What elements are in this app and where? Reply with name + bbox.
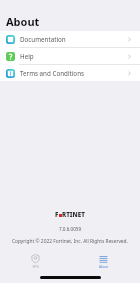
staticText: RTINET: [62, 210, 85, 218]
button[interactable]: VPN: [1, 254, 69, 270]
button[interactable]: Terms and Conditions: [0, 65, 140, 81]
staticText: F: [55, 210, 59, 218]
other: About: [99, 254, 108, 263]
staticText: About: [6, 14, 40, 29]
button[interactable]: Help: [0, 48, 140, 64]
button[interactable]: About: [69, 254, 138, 270]
button[interactable]: Documentation: [0, 31, 140, 47]
staticText: About: [99, 265, 108, 269]
staticText: VPN: [32, 265, 39, 269]
staticText: Terms and Conditions: [20, 69, 84, 78]
staticText: Documentation: [20, 35, 66, 44]
staticText: 7.0.6.0059: [59, 226, 82, 232]
staticText: Copyright © 2022 Fortinet, Inc. All Righ…: [12, 238, 128, 245]
other: VPN: [31, 254, 40, 263]
staticText: Help: [20, 52, 34, 61]
